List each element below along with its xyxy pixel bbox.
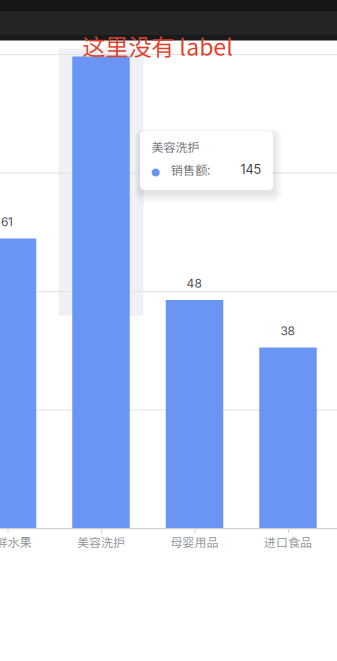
staticText: 美容洗护 [151,140,199,154]
staticText: 新鲜水果 [0,535,31,550]
button[interactable]: 美容洗护 [0,0,57,471]
staticText: 进口食品 [264,535,312,550]
button[interactable]: 进口食品 [0,0,57,180]
staticText: 145 [240,162,261,177]
staticText: 这里没有 label [82,33,233,60]
staticText: 母婴用品 [170,535,218,550]
staticText: 38 [280,324,294,338]
button[interactable]: 母婴用品 [0,0,57,228]
staticText: 48 [186,276,201,291]
staticText: 销售额: [171,163,210,177]
staticText: 美容洗护 [77,535,125,550]
button[interactable]: 新鲜水果 [0,0,57,289]
staticText: 61 [1,215,13,229]
